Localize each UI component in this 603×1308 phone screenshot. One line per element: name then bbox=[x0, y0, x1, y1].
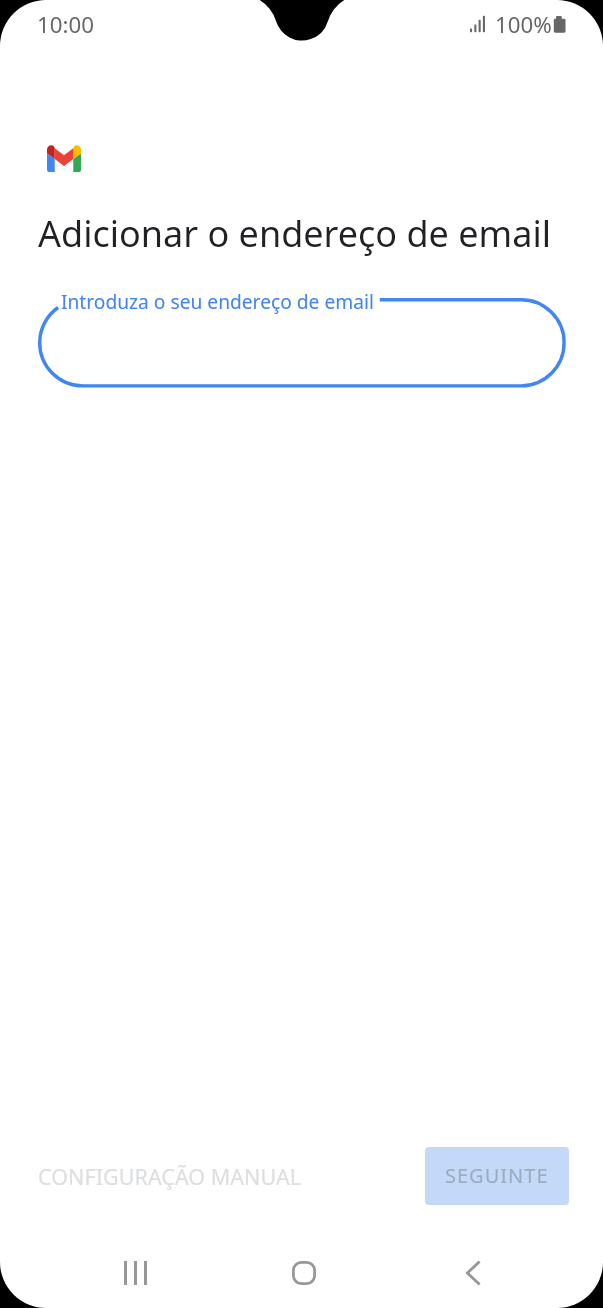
staticText: 10:00 bbox=[37, 9, 94, 39]
button[interactable]: Recents bbox=[79, 1240, 191, 1305]
staticText: SEGUINTE bbox=[445, 1162, 549, 1189]
staticText: Introduza o seu endereço de email bbox=[61, 288, 374, 314]
button[interactable]: Back bbox=[417, 1240, 529, 1305]
button[interactable]: CONFIGURAÇÃO MANUAL bbox=[30, 1154, 310, 1199]
button[interactable]: SEGUINTE bbox=[425, 1147, 569, 1205]
staticText: Adicionar o endereço de email bbox=[38, 209, 552, 258]
button[interactable]: Home bbox=[248, 1240, 360, 1305]
staticText: 100% bbox=[495, 9, 552, 39]
staticText: CONFIGURAÇÃO MANUAL bbox=[38, 1162, 302, 1191]
button[interactable]: Introduza o seu endereço de email bbox=[38, 298, 566, 388]
